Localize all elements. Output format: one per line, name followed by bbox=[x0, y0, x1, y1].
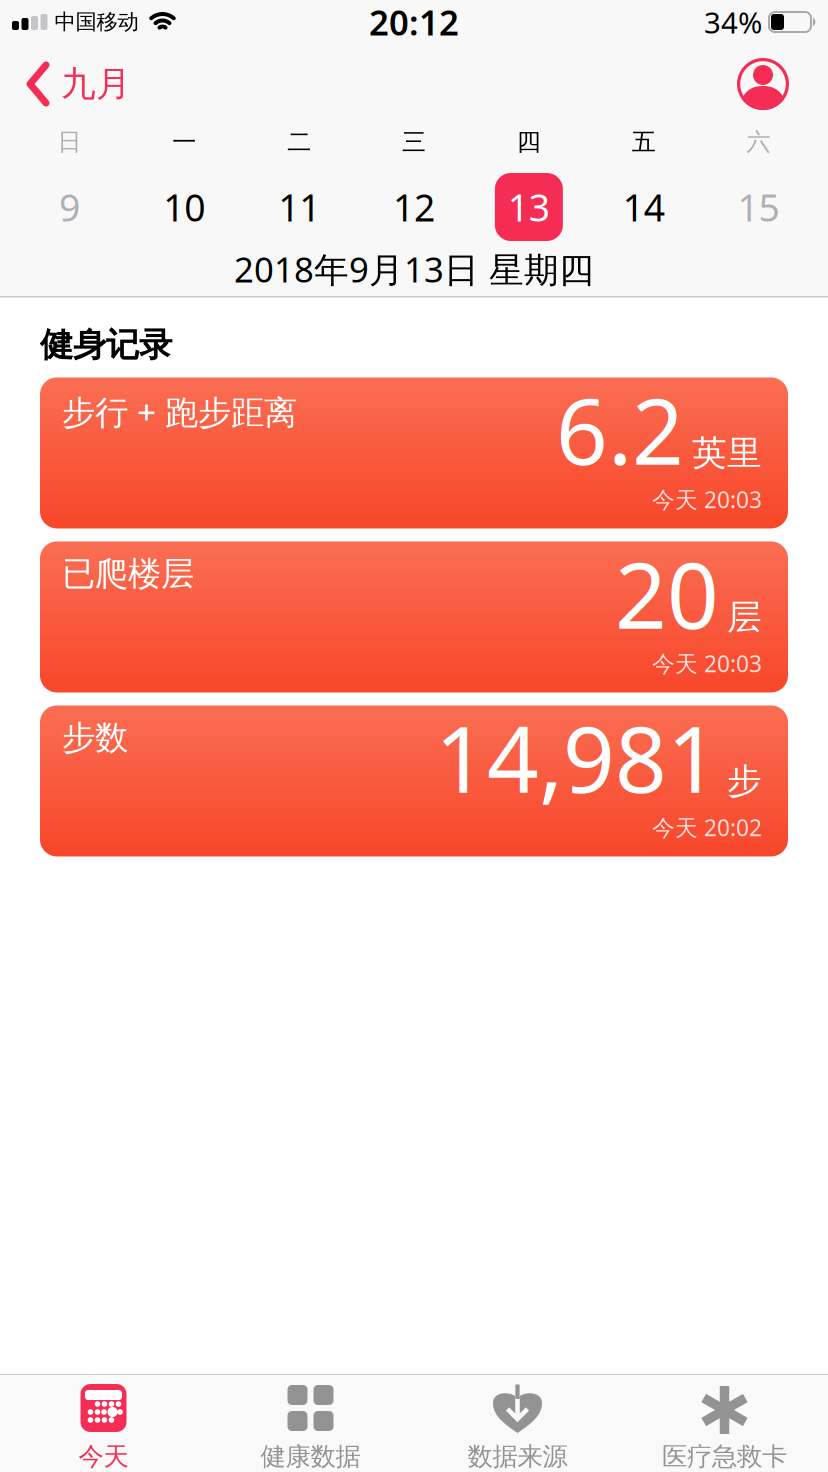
button[interactable]: 步行 + 跑步距离 bbox=[40, 377, 788, 528]
staticText: 10 bbox=[163, 182, 205, 232]
button[interactable]: 个人资料 bbox=[737, 58, 828, 110]
button[interactable]: 9 bbox=[12, 182, 127, 232]
button[interactable]: 11 bbox=[242, 182, 357, 232]
staticText: 日 bbox=[57, 127, 81, 157]
staticText: 数据来源 bbox=[467, 1441, 567, 1472]
staticText: 步数 bbox=[62, 717, 128, 758]
staticText: 三 bbox=[402, 127, 426, 157]
button[interactable]: 步数 bbox=[40, 705, 788, 856]
staticText: 英里 bbox=[692, 432, 762, 475]
button[interactable]: 14 bbox=[586, 182, 701, 232]
button[interactable]: 医疗急救卡 bbox=[621, 1375, 828, 1472]
staticText: 今天 20:02 bbox=[652, 812, 762, 842]
button[interactable]: 今天 bbox=[0, 1375, 207, 1472]
button[interactable]: 15 bbox=[701, 182, 816, 232]
staticText: 五 bbox=[632, 127, 656, 157]
button[interactable]: 已爬楼层 bbox=[40, 541, 788, 692]
staticText: 15 bbox=[738, 182, 780, 232]
staticText: 健身记录 bbox=[40, 324, 172, 365]
staticText: 6.2 bbox=[556, 369, 684, 490]
button[interactable]: 数据来源 bbox=[414, 1375, 621, 1472]
button[interactable]: 健康数据 bbox=[207, 1375, 414, 1472]
staticText: 层 bbox=[727, 596, 762, 639]
staticText: 步行 + 跑步距离 bbox=[62, 389, 297, 434]
button[interactable]: 返回 九月 bbox=[0, 62, 131, 106]
staticText: 今天 20:03 bbox=[652, 484, 762, 514]
staticText: 20:12 bbox=[369, 0, 459, 45]
staticText: 今天 20:03 bbox=[652, 648, 762, 678]
staticText: 二 bbox=[287, 127, 311, 157]
button[interactable]: 12 bbox=[357, 182, 471, 232]
staticText: 健康数据 bbox=[260, 1441, 360, 1472]
staticText: 14 bbox=[623, 182, 665, 232]
staticText: 13 bbox=[508, 182, 550, 232]
staticText: 步 bbox=[727, 760, 762, 803]
staticText: 14,981 bbox=[435, 697, 719, 818]
staticText: 9 bbox=[59, 182, 80, 232]
staticText: 2018年9月13日 星期四 bbox=[234, 246, 594, 292]
staticText: 34% bbox=[704, 2, 762, 41]
staticText: 11 bbox=[278, 182, 320, 232]
staticText: 六 bbox=[747, 127, 771, 157]
button[interactable]: 13 bbox=[471, 173, 586, 241]
button[interactable]: 10 bbox=[127, 182, 242, 232]
staticText: 中国移动 bbox=[54, 9, 138, 35]
staticText: 12 bbox=[393, 182, 435, 232]
staticText: 20 bbox=[615, 533, 719, 654]
staticText: 九月 bbox=[61, 63, 131, 105]
staticText: 医疗急救卡 bbox=[662, 1441, 787, 1472]
staticText: 四 bbox=[517, 127, 541, 157]
staticText: 今天 bbox=[78, 1441, 128, 1472]
staticText: 已爬楼层 bbox=[62, 553, 194, 594]
staticText: 一 bbox=[172, 127, 196, 157]
